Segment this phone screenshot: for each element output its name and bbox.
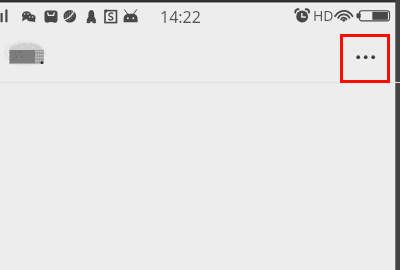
staticText: HD — [313, 6, 334, 25]
button[interactable]: More options — [340, 34, 390, 83]
staticText: 14:22 — [160, 6, 201, 28]
